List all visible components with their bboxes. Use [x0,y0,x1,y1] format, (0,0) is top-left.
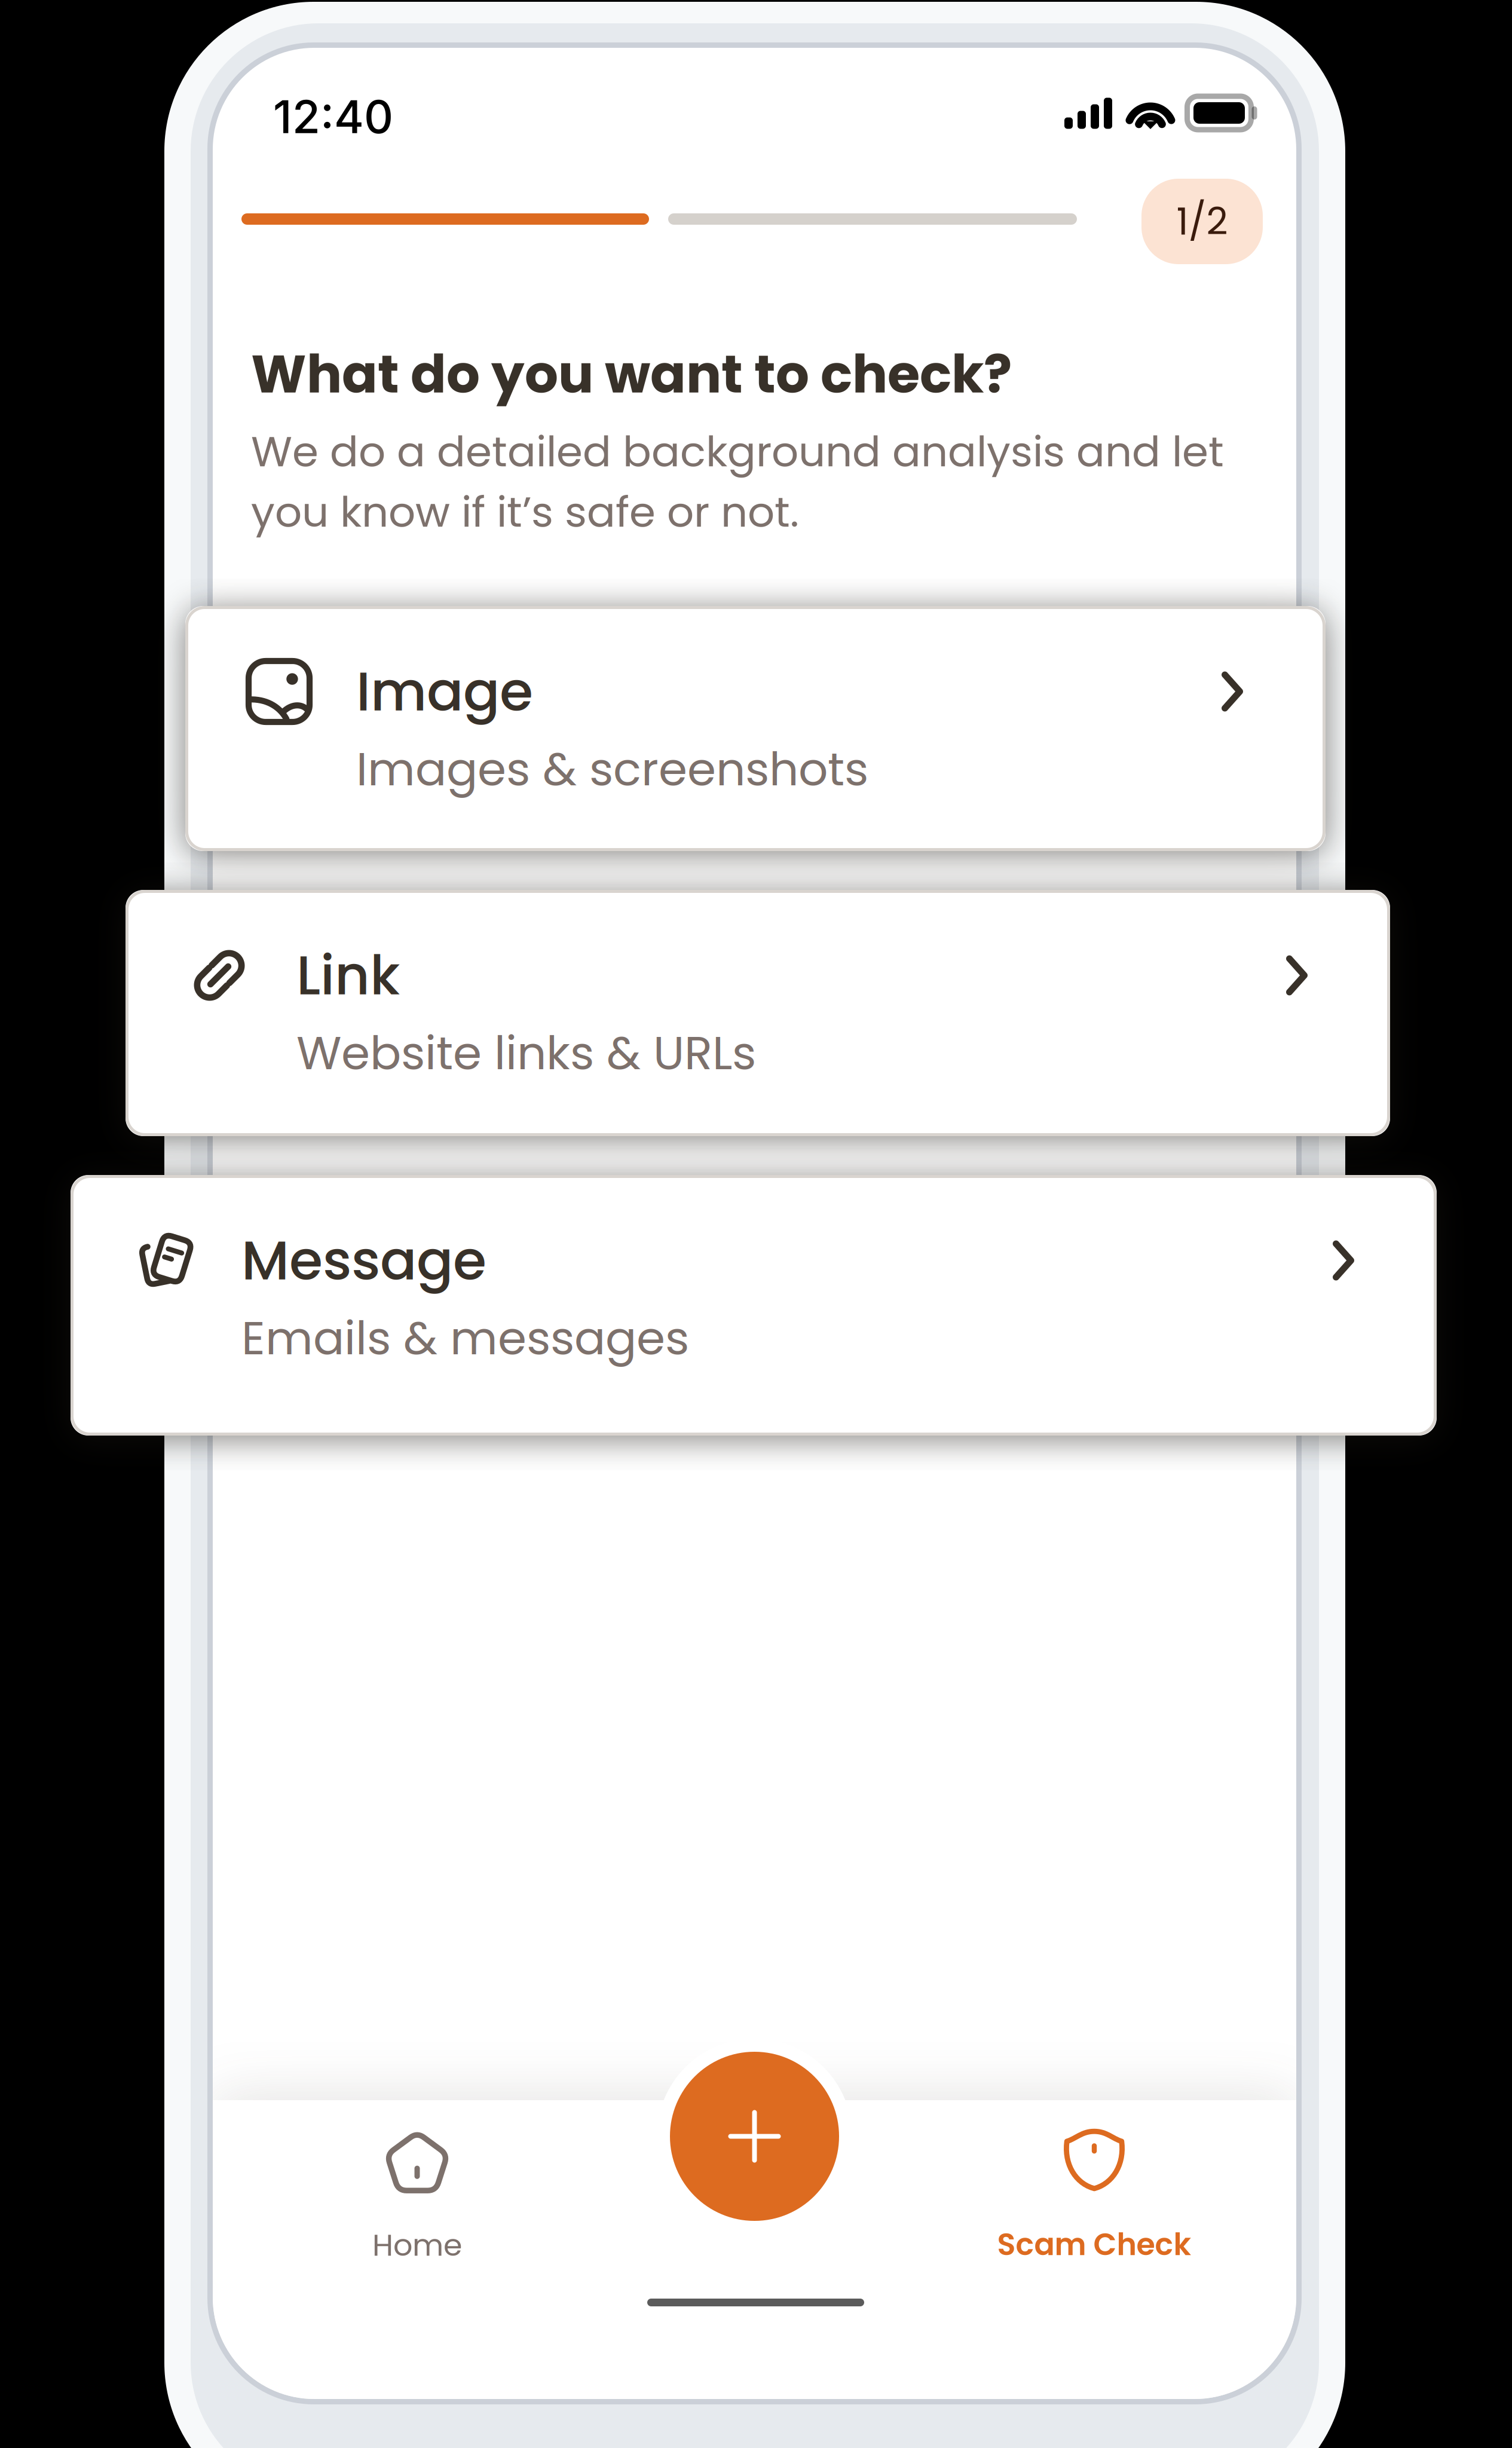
staticText: Home [372,2224,462,2266]
staticText: Emails & messages [241,1306,689,1371]
button[interactable]: Home [286,2129,549,2266]
staticText: Link [296,937,400,1013]
staticText: Images & screenshots [356,737,868,802]
staticText: Scam Check [997,2223,1191,2266]
button[interactable]: New scam check [657,2039,852,2234]
button[interactable]: Image [185,606,1326,851]
staticText: Website links & URLs [296,1021,756,1085]
button[interactable]: Link [126,890,1390,1136]
button[interactable]: Scam Check [963,2128,1226,2266]
staticText: 1/2 [1176,195,1228,248]
staticText: What do you want to check? [251,337,1012,411]
staticText: Message [241,1223,486,1298]
staticText: 12:40 [273,89,393,144]
button[interactable]: Message [71,1175,1437,1436]
staticText: you know if it’s safe or not. [251,482,799,541]
staticText: Image [356,654,533,729]
staticText: We do a detailed background analysis and… [251,422,1224,481]
